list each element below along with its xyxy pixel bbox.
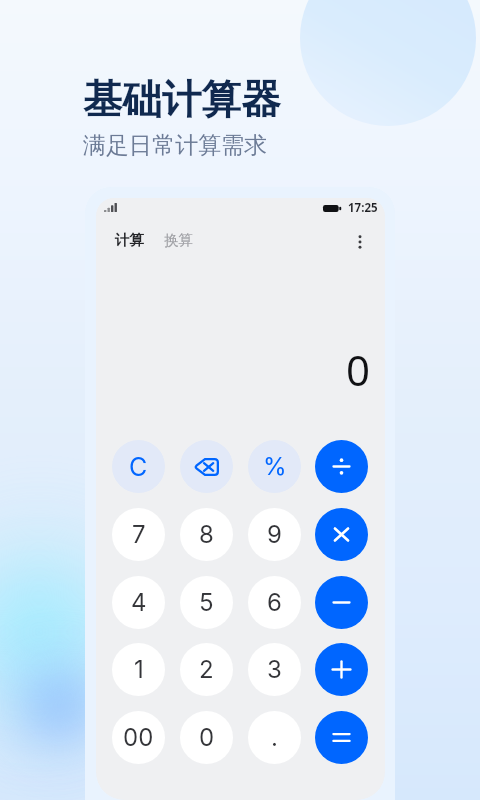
button[interactable] bbox=[315, 711, 368, 764]
button[interactable] bbox=[315, 508, 368, 561]
staticText: 2 bbox=[199, 655, 214, 684]
staticText: 0 bbox=[346, 341, 371, 398]
staticText: 计算 bbox=[115, 231, 144, 249]
button[interactable]: 5 bbox=[180, 576, 233, 629]
button[interactable]: Delete bbox=[180, 440, 233, 493]
staticText: 9 bbox=[267, 520, 282, 549]
staticText: 4 bbox=[131, 588, 147, 617]
button[interactable]: . bbox=[248, 711, 301, 764]
staticText: % bbox=[263, 452, 287, 481]
button[interactable]: 3 bbox=[248, 643, 301, 696]
staticText: 00 bbox=[123, 723, 154, 752]
staticText: 7 bbox=[132, 520, 146, 549]
staticText: 换算 bbox=[164, 231, 193, 249]
button[interactable]: 2 bbox=[180, 643, 233, 696]
staticText: C bbox=[129, 452, 148, 482]
button[interactable]: 0 bbox=[180, 711, 233, 764]
button[interactable]: 9 bbox=[248, 508, 301, 561]
button[interactable]: 7 bbox=[112, 508, 165, 561]
staticText: 3 bbox=[267, 655, 282, 684]
staticText: 5 bbox=[199, 588, 214, 617]
staticText: 1 bbox=[134, 655, 144, 684]
button[interactable]: More options bbox=[348, 230, 372, 254]
button[interactable]: 00 bbox=[112, 711, 165, 764]
staticText: 0 bbox=[199, 723, 215, 752]
staticText: 满足日常计算需求 bbox=[83, 131, 267, 160]
button[interactable]: % bbox=[248, 440, 301, 493]
button[interactable] bbox=[315, 440, 368, 493]
button[interactable] bbox=[315, 576, 368, 629]
staticText: 17:25 bbox=[348, 200, 378, 216]
button[interactable]: C bbox=[112, 440, 165, 493]
button[interactable]: 8 bbox=[180, 508, 233, 561]
button[interactable]: 计算 bbox=[115, 231, 144, 249]
button[interactable] bbox=[315, 643, 368, 696]
staticText: 8 bbox=[199, 520, 214, 549]
button[interactable]: 换算 bbox=[164, 231, 193, 249]
button[interactable]: 6 bbox=[248, 576, 301, 629]
staticText: 基础计算器 bbox=[83, 75, 281, 125]
staticText: 6 bbox=[267, 588, 282, 617]
staticText: . bbox=[271, 723, 278, 752]
button[interactable]: 1 bbox=[112, 643, 165, 696]
button[interactable]: 4 bbox=[112, 576, 165, 629]
